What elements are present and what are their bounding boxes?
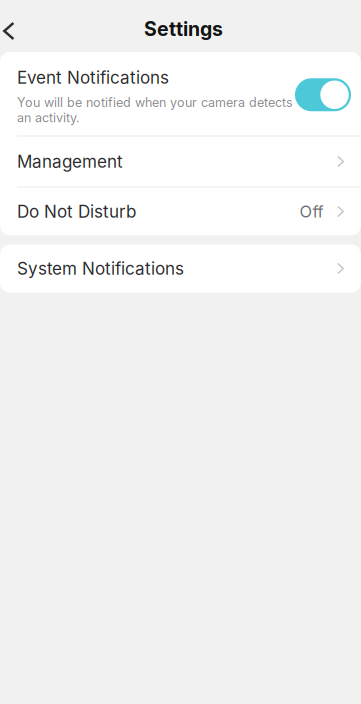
staticText: Off <box>299 202 323 221</box>
button[interactable]: Event Notifications, on <box>295 78 351 111</box>
button[interactable]: Management <box>0 136 361 186</box>
staticText: Event Notifications <box>17 67 169 88</box>
button[interactable]: System Notifications <box>0 244 361 292</box>
staticText: System Notifications <box>17 258 184 279</box>
staticText: You will be notified when your camera de… <box>17 95 293 125</box>
staticText: Do Not Disturb <box>17 201 136 222</box>
staticText: Management <box>17 151 123 172</box>
button[interactable]: Do Not Disturb <box>0 187 361 235</box>
button[interactable]: Back <box>0 0 37 53</box>
staticText: Settings <box>144 17 223 41</box>
